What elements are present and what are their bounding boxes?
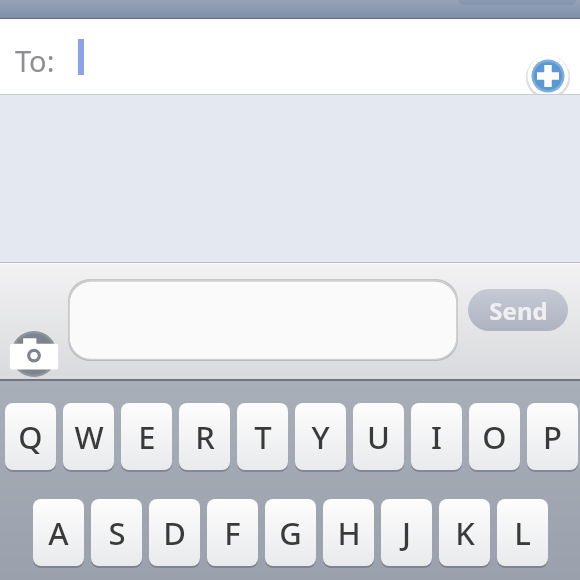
staticText: T: [254, 416, 272, 458]
button[interactable]: O: [469, 403, 520, 470]
staticText: S: [108, 512, 126, 554]
button[interactable]: D: [149, 499, 200, 566]
staticText: H: [337, 512, 361, 554]
button[interactable]: Y: [295, 403, 346, 470]
button[interactable]: Q: [5, 403, 56, 470]
staticText: R: [195, 416, 215, 458]
button[interactable]: H: [323, 499, 374, 566]
staticText: I: [431, 416, 442, 458]
staticText: To:: [15, 41, 55, 80]
button[interactable]: Camera: [11, 331, 57, 377]
staticText: O: [482, 416, 507, 458]
button[interactable]: F: [207, 499, 258, 566]
button[interactable]: G: [265, 499, 316, 566]
staticText: Q: [18, 416, 43, 458]
button[interactable]: W: [63, 403, 114, 470]
button[interactable]: U: [353, 403, 404, 470]
staticText: L: [514, 512, 531, 554]
staticText: U: [367, 416, 390, 458]
button[interactable]: S: [91, 499, 142, 566]
button[interactable]: I: [411, 403, 462, 470]
staticText: A: [48, 512, 69, 554]
staticText: Send: [489, 294, 548, 327]
staticText: P: [543, 416, 562, 458]
button[interactable]: P: [527, 403, 578, 470]
button[interactable]: R: [179, 403, 230, 470]
staticText: J: [402, 512, 411, 554]
button[interactable]: E: [121, 403, 172, 470]
button[interactable]: Add contact: [526, 54, 570, 98]
button[interactable]: A: [33, 499, 84, 566]
button[interactable]: J: [381, 499, 432, 566]
staticText: W: [74, 416, 104, 458]
button[interactable]: To:: [0, 19, 580, 95]
staticText: K: [455, 512, 475, 554]
staticText: Y: [311, 416, 330, 458]
staticText: F: [224, 512, 241, 554]
staticText: D: [163, 512, 186, 554]
staticText: G: [279, 512, 302, 554]
staticText: E: [138, 416, 156, 458]
button[interactable]: Send: [468, 289, 568, 331]
button[interactable]: [68, 279, 458, 361]
button[interactable]: K: [439, 499, 490, 566]
button[interactable]: T: [237, 403, 288, 470]
button[interactable]: L: [497, 499, 548, 566]
